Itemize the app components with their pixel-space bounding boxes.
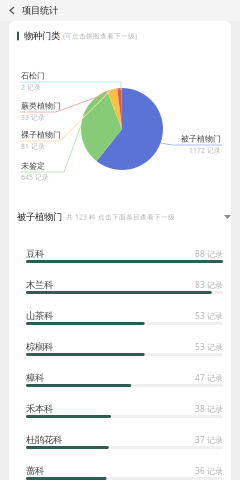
- button[interactable]: 樟科: [26, 372, 223, 387]
- staticText: 豆科: [26, 248, 44, 260]
- staticText: 88 记录: [195, 249, 223, 259]
- staticText: 蕨类植物门: [21, 101, 61, 111]
- button[interactable]: Back: [0, 0, 22, 21]
- staticText: 53 记录: [195, 311, 223, 321]
- button[interactable]: 被子植物门: [17, 210, 231, 224]
- staticText: 物种门类: [24, 30, 60, 42]
- staticText: 共 123 科 点击下面条目查看下一级: [66, 213, 175, 221]
- staticText: 81 记录: [21, 142, 45, 151]
- staticText: 1172 记录: [189, 146, 221, 155]
- staticText: 37 记录: [195, 435, 223, 445]
- staticText: 裸子植物门: [21, 130, 61, 140]
- staticText: 樟科: [26, 372, 44, 384]
- staticText: 33 记录: [21, 113, 45, 122]
- staticText: 禾本科: [26, 403, 53, 415]
- staticText: 木兰科: [26, 279, 53, 291]
- staticText: 645 记录: [21, 173, 49, 182]
- staticText: (可点击饼图查看下一级): [63, 32, 137, 40]
- staticText: 36 记录: [195, 466, 223, 476]
- staticText: 杜鹃花科: [26, 434, 62, 446]
- staticText: 被子植物门: [17, 211, 62, 223]
- staticText: 未鉴定: [21, 161, 45, 171]
- staticText: 53 记录: [195, 342, 223, 352]
- staticText: 项目统计: [22, 5, 58, 16]
- staticText: 石松门: [21, 71, 45, 81]
- button[interactable]: 蔷科: [26, 465, 223, 480]
- staticText: 2 记录: [21, 83, 41, 92]
- button[interactable]: 木兰科: [26, 279, 223, 294]
- button[interactable]: 棕榈科: [26, 341, 223, 356]
- button[interactable]: 禾本科: [26, 403, 223, 418]
- button[interactable]: 豆科: [26, 248, 223, 263]
- staticText: 47 记录: [195, 373, 223, 383]
- staticText: 被子植物门: [181, 134, 221, 144]
- staticText: 38 记录: [195, 404, 223, 414]
- staticText: 83 记录: [195, 280, 223, 290]
- staticText: 山茶科: [26, 310, 53, 322]
- staticText: 棕榈科: [26, 341, 53, 353]
- staticText: 蔷科: [26, 465, 44, 477]
- button[interactable]: 杜鹃花科: [26, 434, 223, 449]
- button[interactable]: 山茶科: [26, 310, 223, 325]
